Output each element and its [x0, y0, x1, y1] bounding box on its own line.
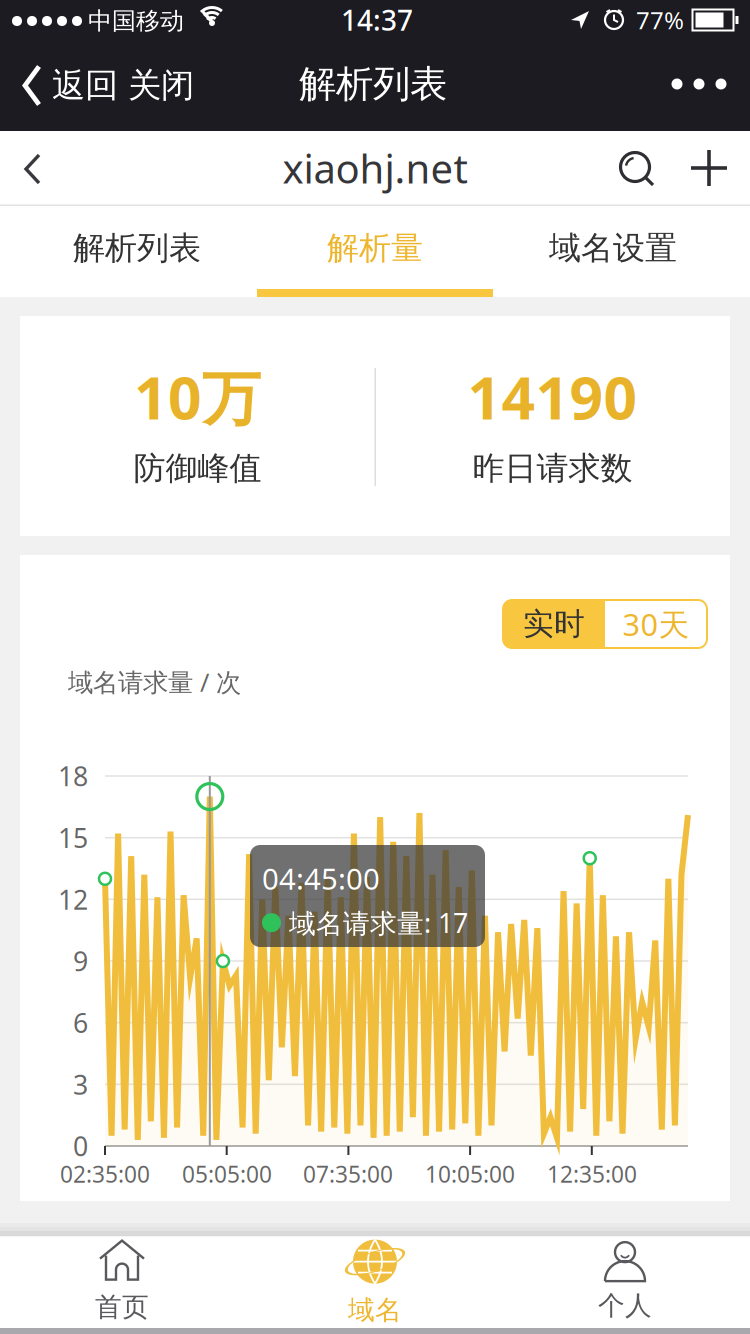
staticText: 10:05:00 — [425, 1159, 515, 1189]
staticText: 6 — [73, 1005, 88, 1040]
staticText: 04:45:00 — [262, 859, 380, 898]
staticText: 解析量 — [327, 228, 423, 268]
staticText: 05:05:00 — [182, 1159, 272, 1189]
staticText: 域名 — [348, 1294, 402, 1326]
button[interactable]: 解析列表 — [12, 206, 262, 290]
staticText: 个人 — [598, 1289, 652, 1322]
button[interactable] — [671, 73, 726, 94]
staticText: 中国移动 — [88, 6, 184, 36]
staticText: 12:35:00 — [547, 1159, 637, 1189]
staticText: 14190 — [467, 358, 637, 436]
staticText: 解析列表 — [73, 228, 201, 268]
button[interactable]: 解析量 — [250, 206, 500, 290]
button[interactable]: 域名 — [285, 1236, 465, 1327]
staticText: 3 — [73, 1067, 88, 1102]
staticText: 77% — [636, 4, 684, 36]
button[interactable]: 30天 — [605, 600, 707, 648]
staticText: 12 — [58, 882, 88, 917]
button[interactable]: 首页 — [32, 1236, 212, 1327]
button[interactable]: 返回 关闭 — [22, 40, 194, 131]
staticText: 返回 关闭 — [52, 65, 194, 106]
staticText: 首页 — [95, 1291, 149, 1323]
staticText: 域名请求量: 17 — [289, 905, 468, 940]
button[interactable] — [24, 152, 42, 186]
staticText: 域名请求量 / 次 — [68, 665, 241, 699]
button[interactable] — [618, 150, 656, 188]
staticText: 防御峰值 — [133, 449, 261, 488]
staticText: 15 — [58, 820, 88, 855]
button[interactable]: 实时 — [503, 600, 605, 648]
button[interactable]: 个人 — [535, 1236, 715, 1327]
staticText: 18 — [58, 758, 88, 794]
staticText: 域名设置 — [549, 228, 677, 268]
staticText: 02:35:00 — [60, 1159, 150, 1189]
button[interactable] — [691, 150, 727, 186]
staticText: xiaohj.net — [282, 141, 467, 194]
staticText: 实时 — [523, 605, 585, 643]
staticText: 30天 — [622, 604, 689, 644]
button[interactable]: 域名设置 — [488, 206, 738, 290]
staticText: 解析列表 — [299, 61, 447, 107]
staticText: 0 — [73, 1128, 88, 1164]
staticText: 14:37 — [341, 1, 413, 39]
staticText: 10万 — [134, 358, 261, 436]
staticText: 07:35:00 — [303, 1159, 393, 1189]
staticText: 昨日请求数 — [472, 449, 632, 488]
staticText: 9 — [73, 943, 88, 979]
